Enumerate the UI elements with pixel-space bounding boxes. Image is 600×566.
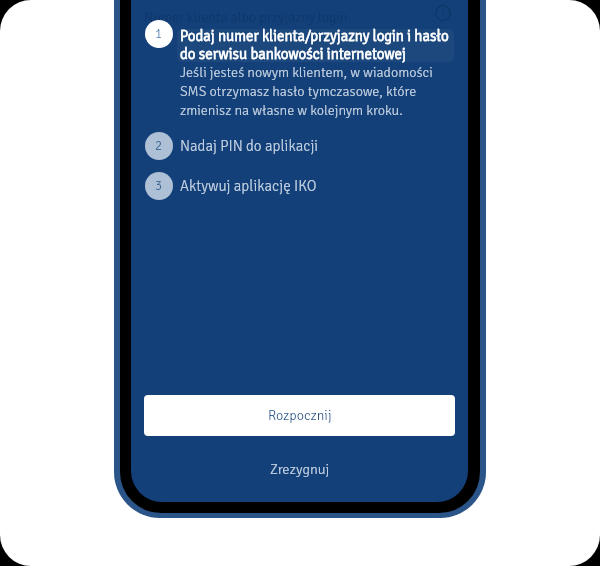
staticText: Podaj numer klienta/przyjazny login i ha… — [180, 27, 460, 63]
button[interactable]: Pomoc — [435, 5, 451, 21]
staticText: 1 — [155, 26, 163, 42]
staticText: 3 — [155, 178, 163, 194]
staticText: Numer klienta albo przyjazny login — [144, 9, 348, 26]
button[interactable]: 3 — [145, 172, 445, 200]
button[interactable]: 2 — [145, 132, 445, 160]
staticText: Rozpocznij — [268, 407, 332, 424]
staticText: ? — [441, 7, 445, 19]
staticText: Zrezygnuj — [270, 460, 330, 478]
staticText: 2 — [155, 138, 163, 154]
button[interactable]: Rozpocznij — [144, 395, 455, 436]
staticText: Jeśli jesteś nowym klientem, w wiadomośc… — [180, 64, 446, 120]
staticText: Aktywuj aplikację IKO — [180, 177, 317, 195]
button[interactable]: Zrezygnuj — [144, 452, 455, 486]
staticText: Nadaj PIN do aplikacji — [180, 137, 319, 155]
